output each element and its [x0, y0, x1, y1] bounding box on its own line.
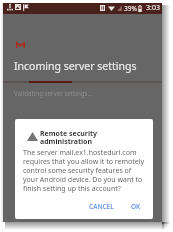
- button[interactable]: OK: [128, 199, 144, 214]
- staticText: Remote security administration: [40, 129, 98, 146]
- button[interactable]: CANCEL: [86, 199, 117, 214]
- staticText: 3:03: [146, 3, 160, 13]
- staticText: 39%: [124, 4, 137, 13]
- staticText: Incoming server settings: [14, 59, 137, 73]
- staticText: The server mail.ex1.hostedurl.com requir…: [23, 148, 146, 193]
- staticText: OK: [131, 202, 141, 211]
- staticText: Validating server settings…: [14, 89, 93, 97]
- staticText: CANCEL: [89, 202, 114, 211]
